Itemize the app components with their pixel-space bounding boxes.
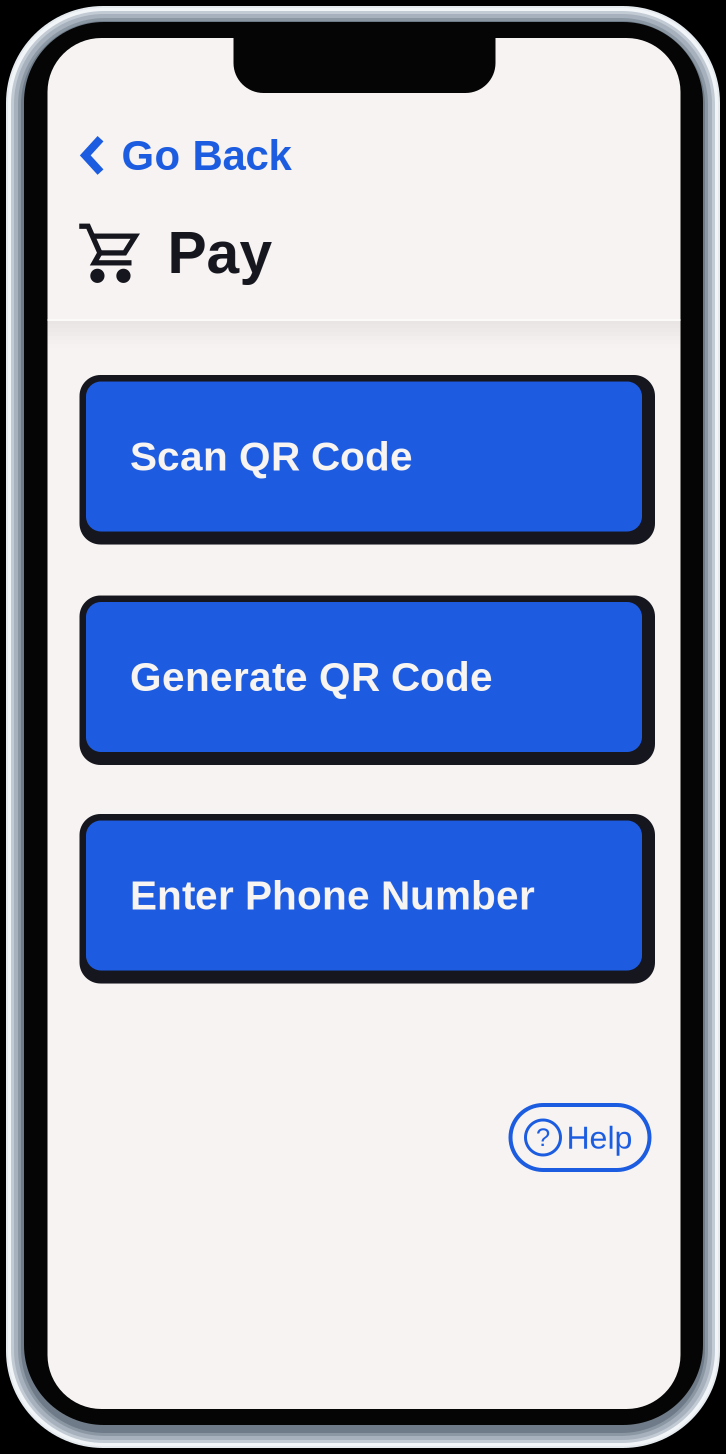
staticText: Help [566, 1120, 632, 1155]
button[interactable]: Go Back [47, 128, 309, 183]
button[interactable]: Scan QR Code [79, 375, 655, 544]
staticText: Go Back [121, 132, 291, 179]
staticText: ? [536, 1123, 550, 1152]
staticText: Enter Phone Number [130, 873, 535, 918]
staticText: Scan QR Code [130, 434, 413, 479]
staticText: Generate QR Code [130, 654, 493, 700]
button[interactable]: Enter Phone Number [79, 814, 655, 983]
staticText: Pay [167, 220, 272, 285]
button[interactable]: ? [510, 1105, 649, 1170]
button[interactable]: Generate QR Code [79, 595, 655, 765]
